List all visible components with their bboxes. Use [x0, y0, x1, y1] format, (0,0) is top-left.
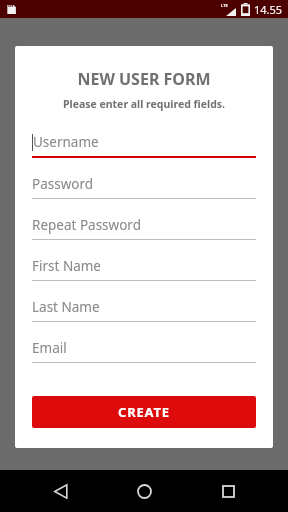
button[interactable]: Email	[32, 339, 256, 380]
button[interactable]: Back	[36, 470, 84, 512]
button[interactable]: Username	[32, 133, 256, 175]
staticText: CREATE	[118, 403, 170, 421]
staticText: Last Name	[32, 298, 100, 316]
button[interactable]: Repeat Password	[32, 216, 256, 257]
staticText: 14.55	[254, 2, 283, 17]
button[interactable]: Home	[120, 470, 168, 512]
button[interactable]: Last Name	[32, 298, 256, 339]
button[interactable]: First Name	[32, 257, 256, 298]
button[interactable]: Recent apps	[204, 470, 252, 512]
button[interactable]: Password	[32, 175, 256, 216]
staticText: Repeat Password	[32, 216, 141, 234]
staticText: NEW USER FORM	[32, 68, 256, 90]
staticText: First Name	[32, 257, 101, 275]
staticText: Username	[33, 133, 99, 151]
staticText: Please enter all required fields.	[32, 97, 256, 111]
staticText: Password	[32, 175, 94, 193]
staticText: LTE	[221, 3, 228, 8]
staticText: Email	[32, 339, 67, 357]
button[interactable]: CREATE	[32, 396, 256, 428]
